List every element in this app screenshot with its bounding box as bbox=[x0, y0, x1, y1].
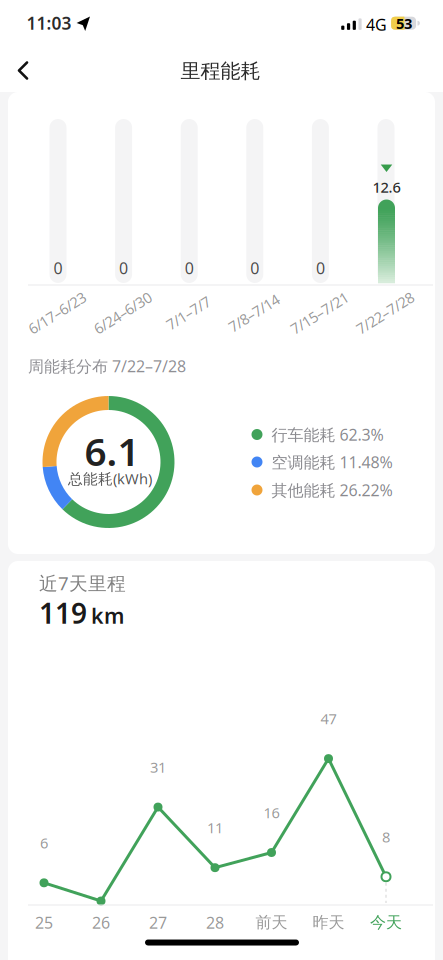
staticText: 6/17–6/23 bbox=[24, 303, 89, 323]
staticText: 31 bbox=[150, 757, 166, 777]
staticText: 周能耗分布 7/22–7/28 bbox=[28, 355, 186, 377]
staticText: 27 bbox=[149, 912, 167, 933]
staticText: 26 bbox=[92, 912, 110, 933]
staticText: 昨天 bbox=[312, 913, 344, 932]
staticText: 6.1 bbox=[84, 425, 139, 477]
staticText: 7/8–7/14 bbox=[225, 303, 282, 323]
staticText: 0 bbox=[185, 257, 194, 279]
staticText: 总能耗(kWh) bbox=[68, 469, 152, 488]
staticText: 里程能耗 bbox=[180, 59, 260, 83]
staticText: 8 bbox=[382, 827, 390, 846]
staticText: 0 bbox=[250, 257, 259, 279]
staticText: 11:03 bbox=[26, 11, 71, 34]
staticText: 119 bbox=[39, 594, 87, 632]
staticText: 12.6 bbox=[372, 177, 400, 197]
button[interactable]: Back bbox=[1, 48, 45, 92]
staticText: 7/22–7/28 bbox=[352, 303, 417, 323]
staticText: 6/24–6/30 bbox=[90, 303, 155, 323]
staticText: 0 bbox=[119, 257, 128, 279]
staticText: km bbox=[91, 601, 124, 630]
staticText: 25 bbox=[35, 912, 53, 933]
staticText: 空调能耗 11.48% bbox=[271, 451, 392, 473]
staticText: 7/1–7/7 bbox=[164, 303, 213, 323]
staticText: 前天 bbox=[255, 913, 287, 932]
staticText: 53 bbox=[396, 13, 412, 33]
staticText: 7/15–7/21 bbox=[287, 303, 352, 323]
staticText: 0 bbox=[53, 257, 62, 279]
staticText: 其他能耗 26.22% bbox=[271, 479, 392, 501]
staticText: 28 bbox=[206, 912, 224, 933]
staticText: 今天 bbox=[370, 913, 402, 932]
staticText: 0 bbox=[316, 257, 325, 279]
staticText: 11 bbox=[207, 818, 223, 837]
staticText: 近7天里程 bbox=[39, 571, 126, 595]
staticText: 16 bbox=[263, 803, 279, 822]
staticText: 行车能耗 62.3% bbox=[271, 424, 383, 445]
staticText: 47 bbox=[320, 709, 336, 728]
staticText: 6 bbox=[40, 833, 48, 853]
staticText: 4G bbox=[366, 14, 387, 35]
